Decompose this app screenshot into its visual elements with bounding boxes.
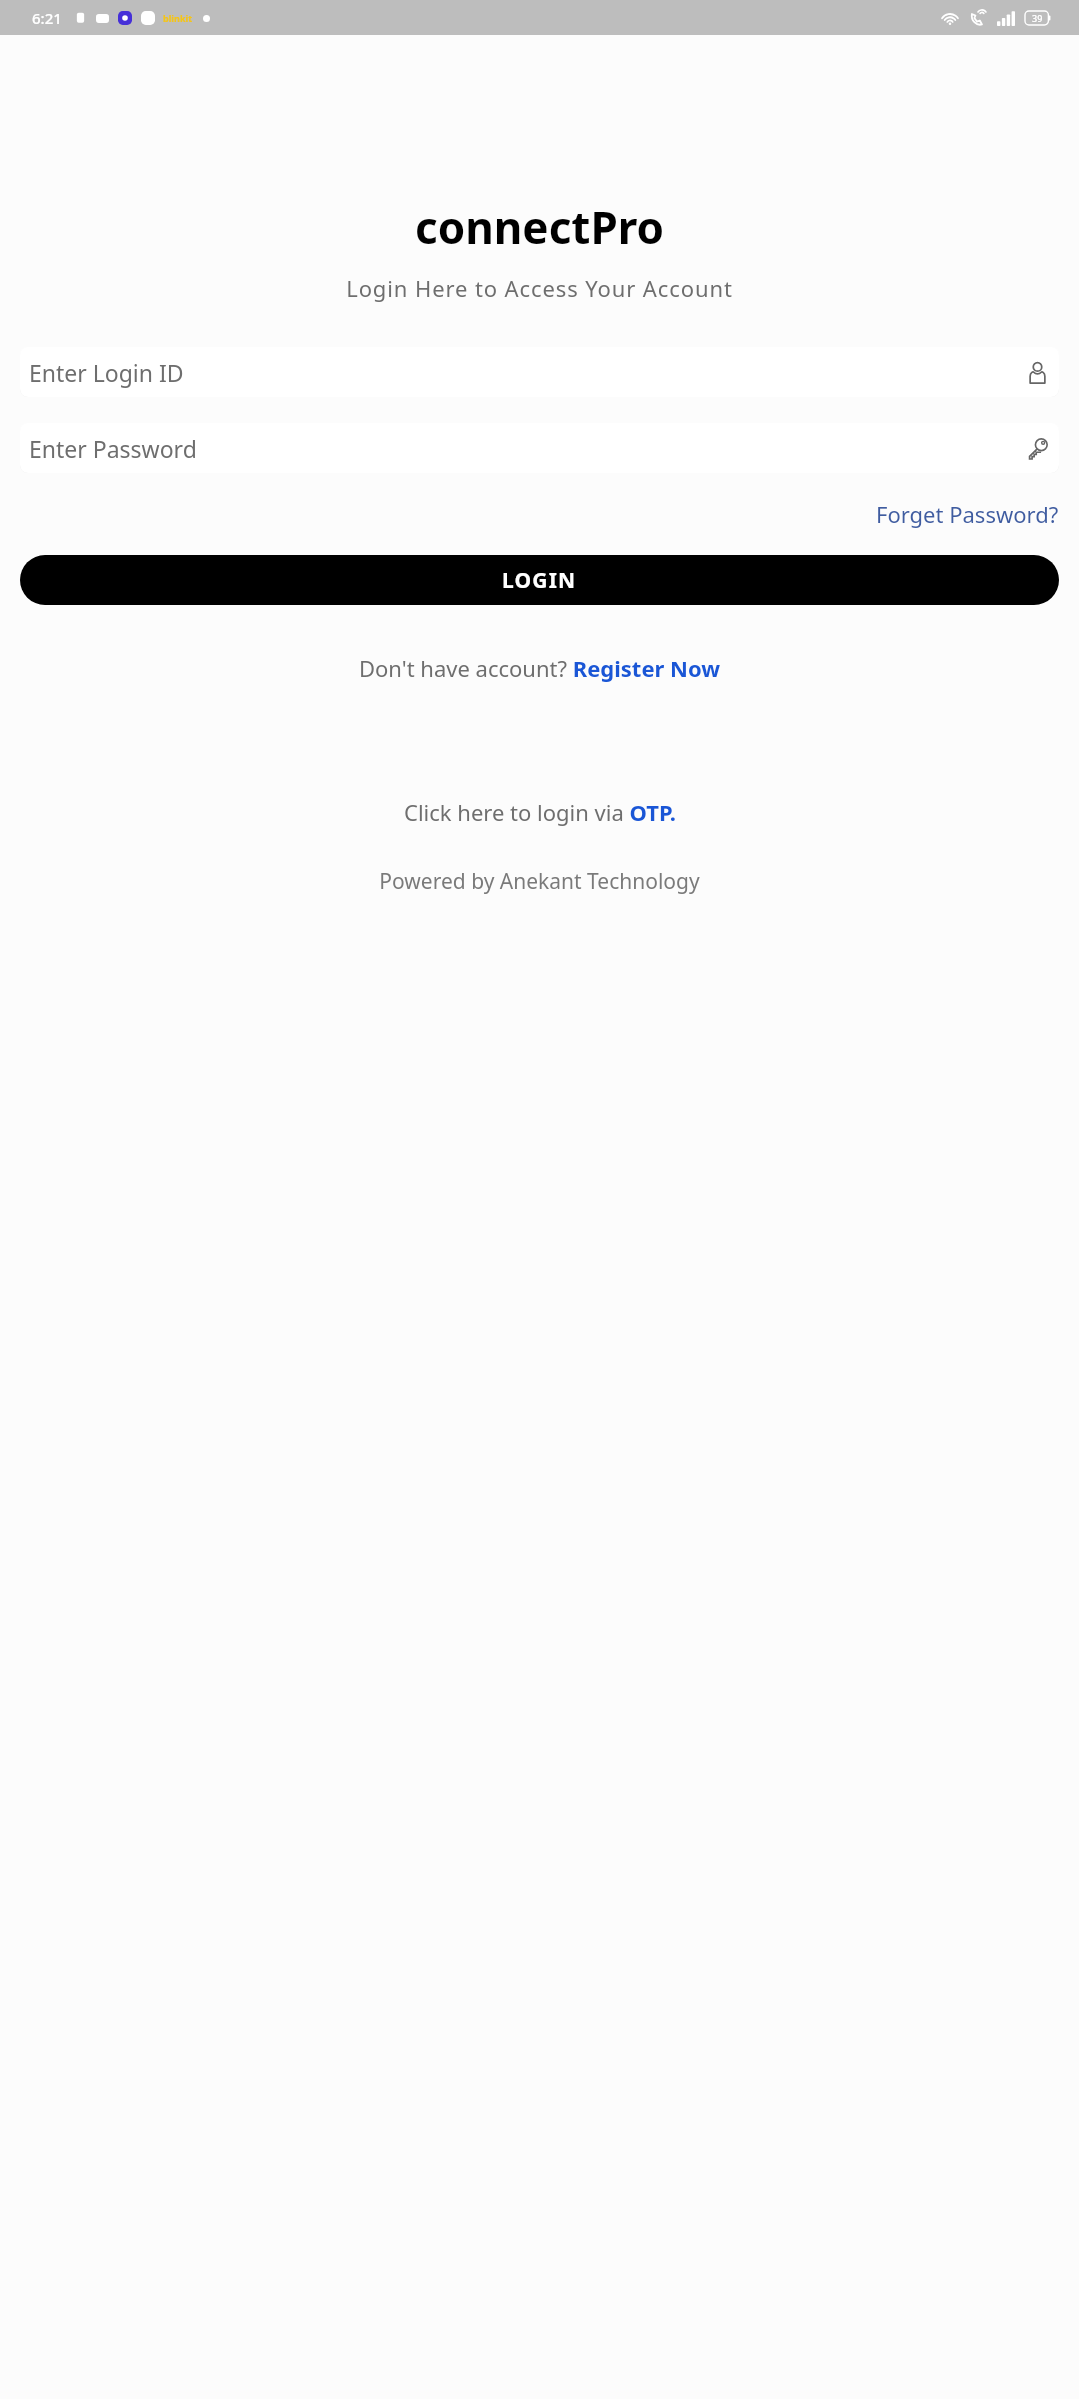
- other: Login ID: [1024, 359, 1050, 385]
- staticText: blinkit: [163, 12, 193, 24]
- staticText: Login Here to Access Your Account: [0, 273, 1079, 303]
- staticText: Powered by Anekant Technology: [0, 867, 1079, 896]
- button[interactable]: Don't have account? Register Now: [351, 647, 729, 689]
- button[interactable]: Forget Password?: [876, 495, 1079, 533]
- button[interactable]: Enter Password: [20, 423, 1059, 473]
- staticText: LOGIN: [502, 566, 577, 595]
- button[interactable]: Enter Login ID: [20, 347, 1059, 397]
- staticText: 39: [1032, 12, 1043, 24]
- staticText: Enter Password: [29, 433, 1024, 464]
- staticText: 6:21: [32, 8, 62, 28]
- other: Password: [1024, 435, 1050, 461]
- staticText: Don't have account? Register Now: [359, 653, 721, 683]
- staticText: Click here to login via OTP.: [404, 797, 676, 827]
- button[interactable]: LOGIN: [20, 555, 1059, 605]
- staticText: connectPro: [0, 197, 1079, 257]
- staticText: Enter Login ID: [29, 357, 1024, 388]
- staticText: Forget Password?: [876, 499, 1059, 529]
- button[interactable]: Click here to login via OTP.: [396, 791, 684, 833]
